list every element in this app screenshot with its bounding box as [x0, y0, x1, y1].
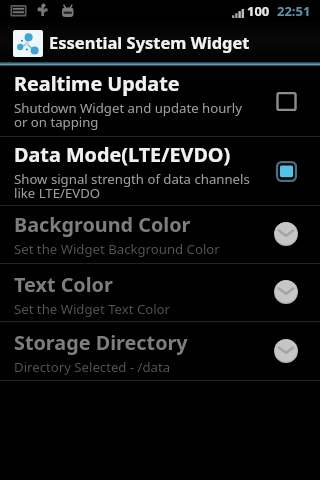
staticText: Directory Selected - /data: [14, 358, 171, 376]
staticText: Set the Widget Text Color: [14, 300, 171, 318]
button[interactable]: Checked: [266, 151, 306, 191]
button[interactable]: Open picker: [266, 272, 306, 312]
staticText: 22:51: [277, 2, 311, 20]
staticText: Data Mode(LTE/EVDO): [14, 141, 231, 168]
button[interactable]: Open picker: [266, 214, 306, 254]
staticText: Realtime Update: [14, 70, 180, 97]
staticText: Set the Widget Background Color: [14, 240, 220, 258]
staticText: Shutdown Widget and update hourly or on …: [14, 99, 242, 130]
button[interactable]: Data Mode(LTE/EVDO): [0, 136, 320, 205]
staticText: Essential System Widget: [49, 31, 250, 53]
button[interactable]: Text Color: [0, 263, 320, 321]
staticText: Storage Directory: [14, 329, 188, 356]
staticText: Text Color: [14, 271, 113, 298]
staticText: Show signal strength of data channels li…: [14, 170, 250, 201]
staticText: Background Color: [14, 211, 191, 238]
button[interactable]: Realtime Update: [0, 66, 320, 136]
button[interactable]: Background Color: [0, 205, 320, 263]
button[interactable]: Open picker: [266, 331, 306, 371]
staticText: 100: [247, 2, 270, 20]
button[interactable]: Storage Directory: [0, 321, 320, 380]
button[interactable]: Unchecked: [266, 81, 306, 121]
